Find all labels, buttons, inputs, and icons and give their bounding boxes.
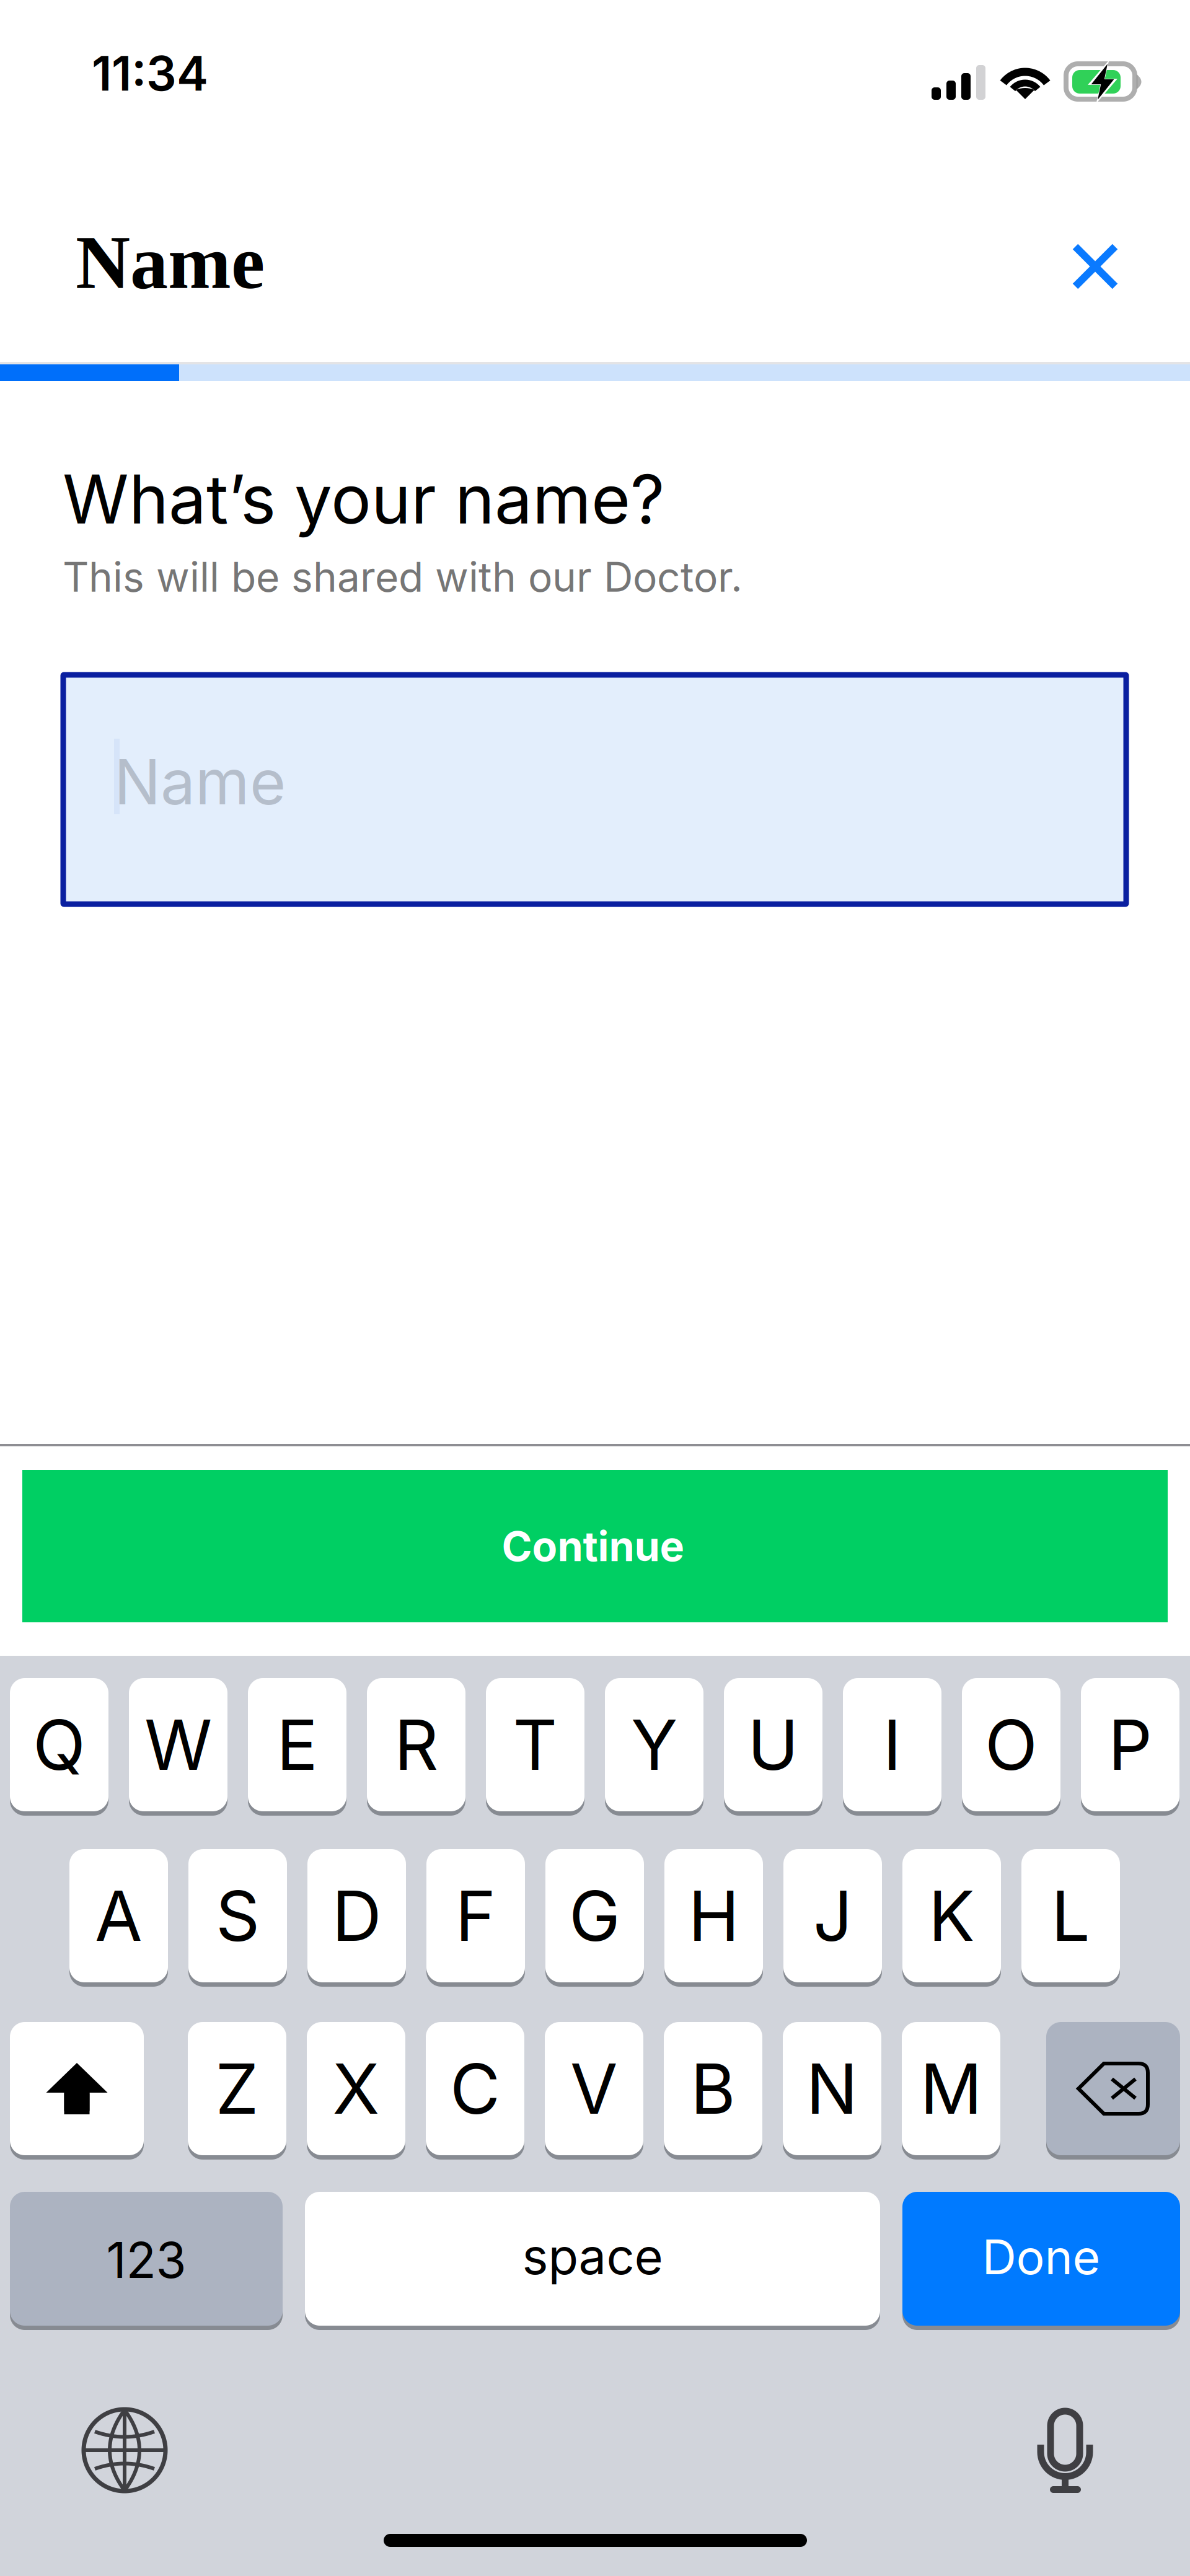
staticText: I [883, 1703, 901, 1786]
staticText: G [569, 1874, 620, 1957]
staticText: Q [33, 1703, 86, 1786]
button[interactable]: P [1081, 1678, 1179, 1811]
button[interactable]: S [188, 1849, 287, 1982]
button[interactable]: C [426, 2022, 524, 2155]
button[interactable]: V [545, 2022, 643, 2155]
button[interactable]: Name [63, 675, 1126, 904]
staticText: N [806, 2047, 858, 2130]
button[interactable]: J [783, 1849, 882, 1982]
staticText: X [333, 2047, 380, 2130]
button[interactable]: Continue [22, 1470, 1168, 1622]
button[interactable]: I [843, 1678, 941, 1811]
staticText: Y [631, 1703, 677, 1786]
button[interactable]: Next keyboard [81, 2407, 168, 2494]
button[interactable]: K [902, 1849, 1001, 1982]
staticText: Name [76, 221, 265, 304]
button[interactable]: O [962, 1678, 1060, 1811]
staticText: U [747, 1703, 799, 1786]
staticText: H [688, 1874, 739, 1957]
button[interactable]: F [426, 1849, 525, 1982]
staticText: P [1108, 1703, 1152, 1786]
staticText: What’s your name? [63, 459, 664, 540]
button[interactable]: T [486, 1678, 584, 1811]
button[interactable]: R [367, 1678, 465, 1811]
button[interactable]: Q [10, 1678, 108, 1811]
button[interactable]: Dictation [1016, 2392, 1114, 2491]
staticText: K [928, 1874, 975, 1957]
staticText: 123 [106, 2230, 186, 2290]
staticText: O [985, 1703, 1038, 1786]
staticText: R [394, 1703, 438, 1786]
staticText: T [513, 1703, 558, 1786]
staticText: M [920, 2047, 982, 2130]
button[interactable]: E [248, 1678, 346, 1811]
button[interactable]: H [664, 1849, 763, 1982]
staticText: Name [114, 744, 286, 819]
staticText: L [1051, 1874, 1090, 1957]
button[interactable]: Done [902, 2192, 1180, 2326]
button[interactable]: A [69, 1849, 168, 1982]
button[interactable]: U [724, 1678, 822, 1811]
staticText: 11:34 [92, 45, 208, 102]
button[interactable]: D [307, 1849, 406, 1982]
staticText: E [276, 1703, 318, 1786]
button[interactable]: B [664, 2022, 762, 2155]
staticText: C [450, 2047, 500, 2130]
staticText: D [332, 1874, 381, 1957]
staticText: Z [215, 2047, 259, 2130]
staticText: J [813, 1874, 852, 1957]
button[interactable]: X [307, 2022, 405, 2155]
staticText: Continue [502, 1521, 685, 1571]
staticText: A [95, 1874, 143, 1957]
button[interactable]: space [305, 2192, 880, 2326]
button[interactable]: Close [1052, 223, 1139, 310]
button[interactable]: N [783, 2022, 881, 2155]
staticText: W [144, 1703, 212, 1786]
button[interactable]: M [902, 2022, 1000, 2155]
staticText: F [455, 1874, 496, 1957]
button[interactable]: Y [605, 1678, 703, 1811]
button[interactable]: Delete [1046, 2022, 1180, 2155]
staticText: V [570, 2047, 618, 2130]
button[interactable]: L [1021, 1849, 1120, 1982]
staticText: B [690, 2047, 736, 2130]
button[interactable]: W [129, 1678, 227, 1811]
staticText: S [216, 1874, 260, 1957]
staticText: Done [982, 2228, 1100, 2286]
button[interactable]: 123 [10, 2192, 283, 2326]
button[interactable]: Shift [10, 2022, 144, 2155]
staticText: This will be shared with our Doctor. [63, 552, 743, 601]
button[interactable]: Z [188, 2022, 286, 2155]
staticText: space [522, 2226, 663, 2286]
button[interactable]: G [545, 1849, 644, 1982]
